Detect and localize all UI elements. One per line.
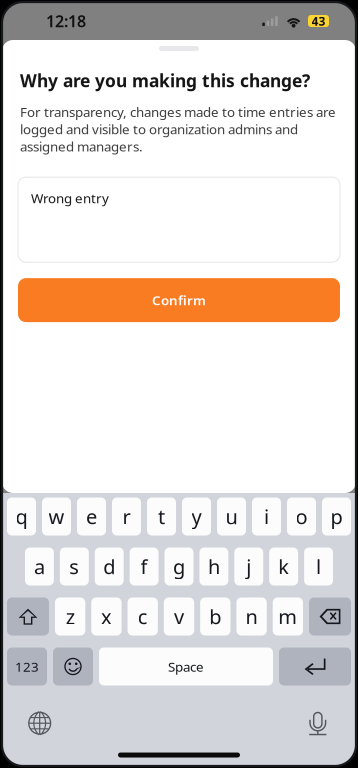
staticText: w — [48, 503, 64, 530]
button[interactable]: Next keyboard — [18, 702, 62, 744]
button[interactable]: i — [252, 497, 281, 535]
button[interactable]: j — [234, 547, 263, 585]
staticText: Space — [168, 658, 204, 675]
staticText: p — [330, 503, 342, 530]
staticText: v — [174, 603, 184, 630]
button[interactable]: Delete — [309, 597, 351, 635]
staticText: e — [86, 503, 97, 530]
button[interactable]: u — [217, 497, 246, 535]
button[interactable]: g — [165, 547, 193, 585]
button[interactable]: x — [91, 597, 122, 635]
staticText: o — [295, 503, 307, 530]
button[interactable]: Confirm — [18, 278, 340, 322]
staticText: u — [225, 503, 237, 530]
staticText: n — [246, 603, 258, 630]
button[interactable]: d — [95, 547, 124, 585]
button[interactable]: n — [236, 597, 267, 635]
button[interactable]: v — [164, 597, 194, 635]
staticText: a — [34, 553, 45, 580]
staticText: Wrong entry — [31, 189, 109, 207]
button[interactable]: e — [77, 497, 106, 535]
button[interactable]: t — [147, 497, 176, 535]
staticText: y — [191, 503, 201, 530]
button[interactable]: a — [25, 547, 54, 585]
staticText: j — [246, 553, 251, 580]
staticText: For transparency, changes made to time e… — [20, 103, 336, 155]
staticText: i — [264, 503, 269, 530]
staticText: s — [69, 553, 79, 580]
staticText: 12:18 — [46, 10, 86, 32]
button[interactable]: Emoji — [53, 647, 93, 685]
staticText: q — [15, 503, 27, 530]
staticText: t — [158, 503, 165, 530]
staticText: 43 — [311, 13, 325, 29]
staticText: Confirm — [152, 291, 206, 309]
staticText: g — [173, 553, 185, 580]
staticText: b — [209, 603, 221, 630]
button[interactable]: Dictate — [296, 702, 340, 744]
button[interactable]: c — [128, 597, 158, 635]
staticText: d — [103, 553, 115, 580]
button[interactable]: s — [60, 547, 89, 585]
button[interactable]: l — [304, 547, 333, 585]
button[interactable]: y — [182, 497, 211, 535]
button[interactable]: Return — [279, 647, 351, 685]
button[interactable]: z — [55, 597, 85, 635]
staticText: Why are you making this change? — [20, 69, 310, 92]
staticText: r — [122, 503, 130, 530]
staticText: f — [141, 553, 148, 580]
staticText: h — [208, 553, 220, 580]
button[interactable]: Shift — [7, 597, 49, 635]
button[interactable]: Space — [99, 647, 273, 685]
button[interactable]: m — [273, 597, 303, 635]
staticText: 123 — [15, 658, 39, 675]
button[interactable]: r — [112, 497, 141, 535]
button[interactable]: Wrong entry — [18, 177, 340, 262]
staticText: m — [278, 603, 297, 630]
staticText: c — [138, 603, 148, 630]
button[interactable]: 123 — [7, 647, 47, 685]
button[interactable]: p — [322, 497, 351, 535]
button[interactable]: k — [269, 547, 298, 585]
staticText: z — [66, 603, 75, 630]
staticText: l — [316, 553, 321, 580]
staticText: k — [278, 553, 289, 580]
button[interactable]: b — [200, 597, 230, 635]
staticText: x — [101, 603, 112, 630]
button[interactable]: o — [287, 497, 316, 535]
button[interactable]: f — [130, 547, 159, 585]
button[interactable]: h — [199, 547, 228, 585]
button[interactable]: w — [42, 497, 71, 535]
button[interactable]: q — [7, 497, 36, 535]
